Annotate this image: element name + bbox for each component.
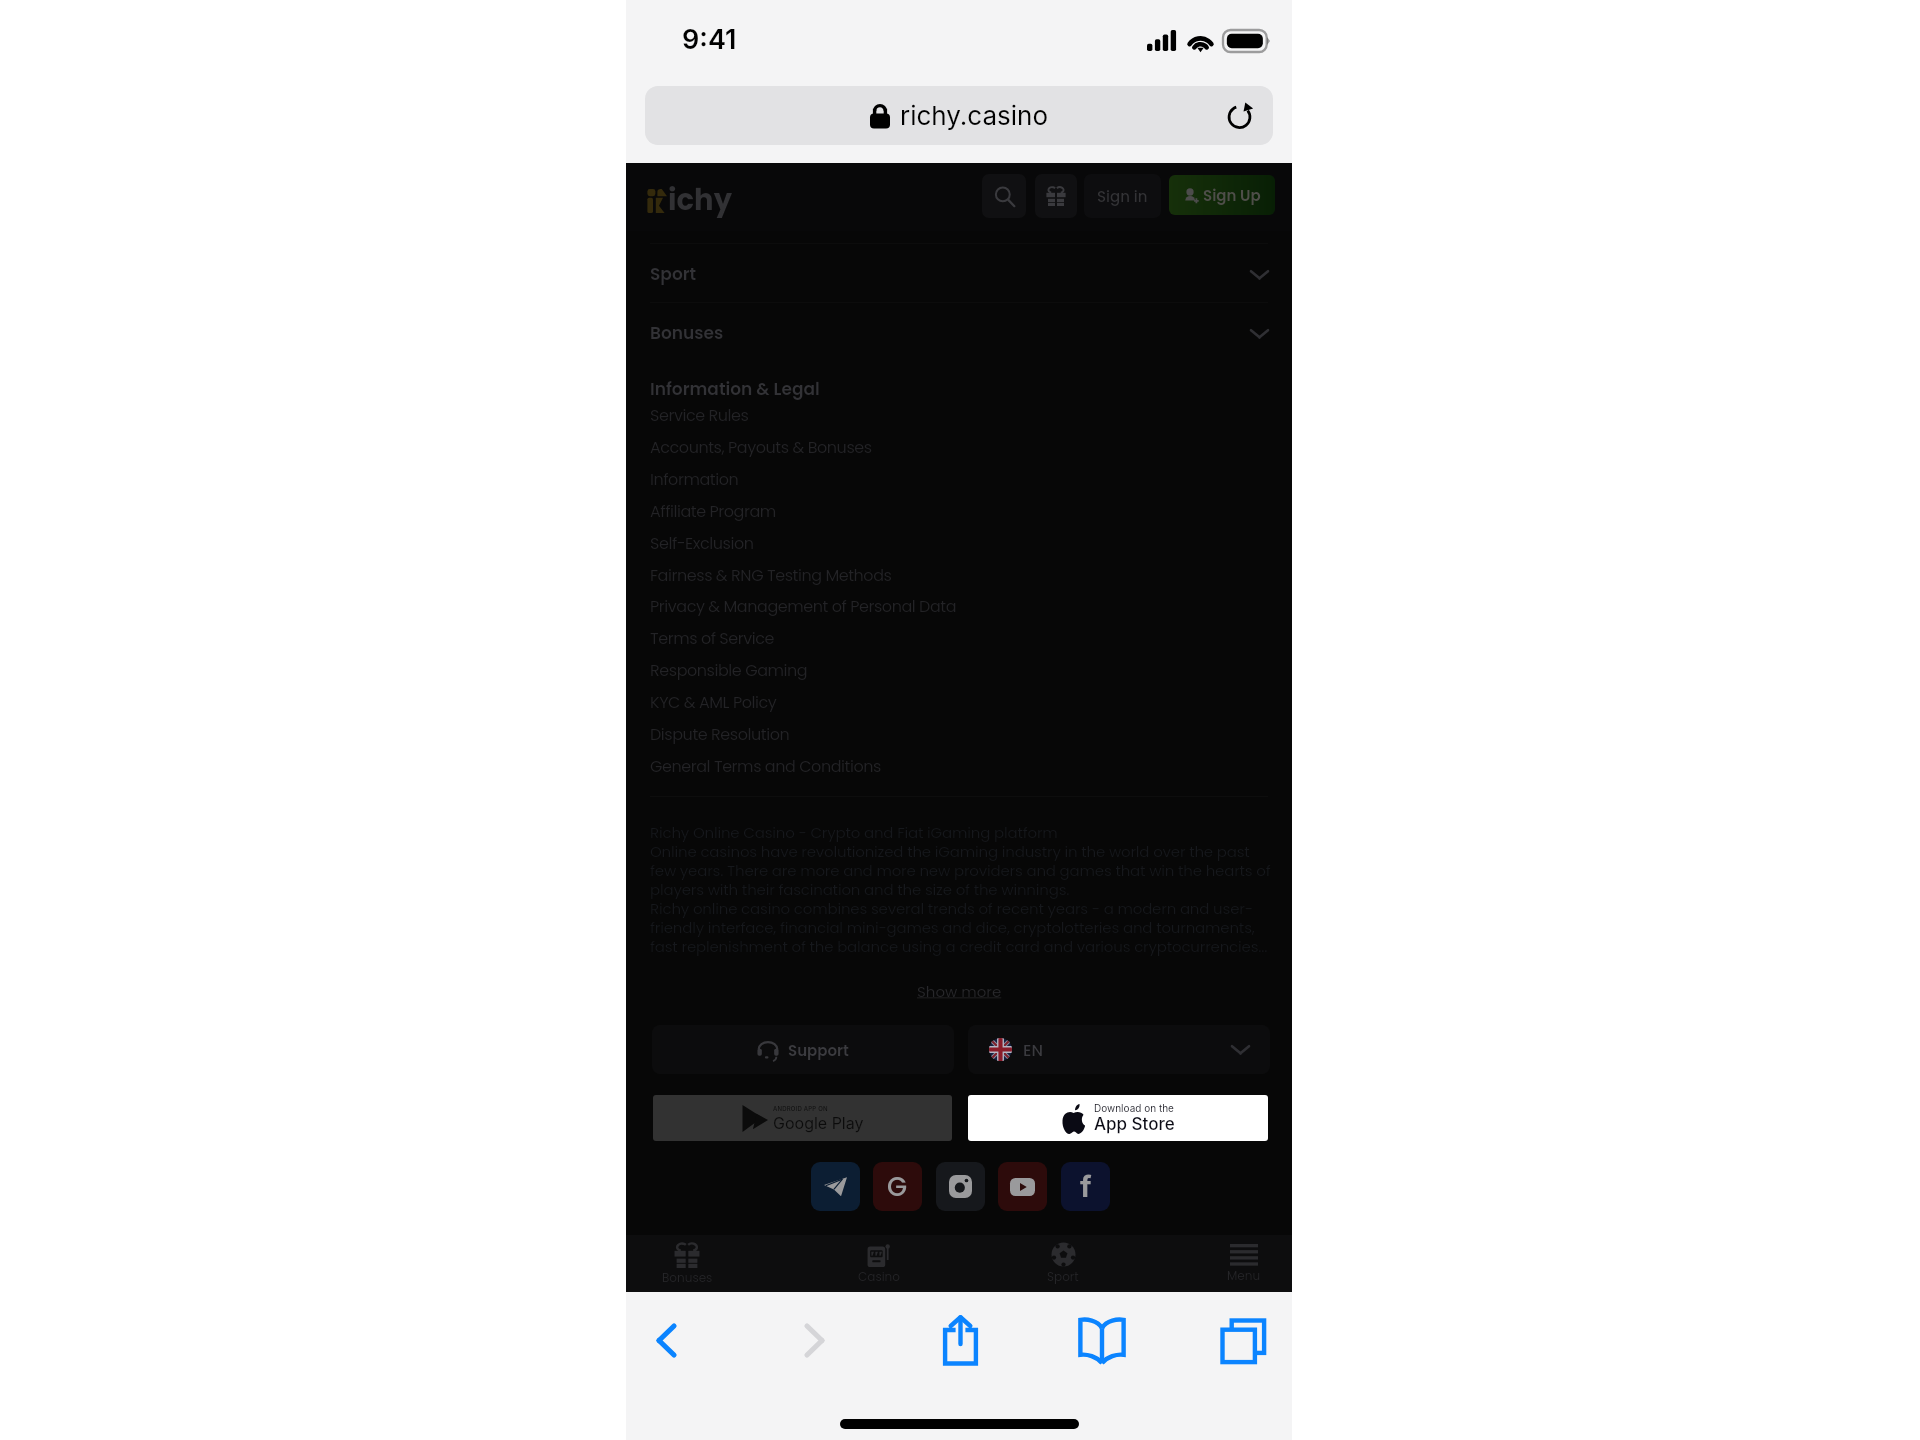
button[interactable]: Download on the (968, 1095, 1268, 1141)
staticText: Support (788, 1040, 849, 1061)
staticText: Sign Up (1203, 185, 1261, 206)
staticText: Richy Online Casino - Crypto and Fiat iG… (650, 822, 1271, 957)
staticText: Information & Legal (650, 377, 820, 401)
button[interactable]: Share (930, 1311, 990, 1369)
staticText: Google Play (773, 1113, 864, 1132)
button[interactable]: Dispute Resolution (626, 718, 1292, 749)
staticText: Bonuses (650, 321, 724, 345)
button[interactable]: Privacy & Management of Personal Data (626, 590, 1292, 621)
staticText: Privacy & Management of Personal Data (650, 595, 957, 617)
button[interactable]: Service Rules (626, 399, 1292, 430)
staticText: Self-Exclusion (650, 532, 754, 554)
button[interactable]: Casino (824, 1235, 934, 1292)
staticText: EN (1023, 1039, 1043, 1061)
button[interactable]: Google (873, 1162, 922, 1211)
staticText: Download on the (1094, 1102, 1174, 1114)
button[interactable]: Responsible Gaming (626, 654, 1292, 685)
staticText: richy.casino (900, 100, 1048, 131)
staticText: Affiliate Program (650, 500, 776, 522)
staticText: Sign in (1097, 186, 1148, 207)
button[interactable]: Self-Exclusion (626, 527, 1292, 558)
button[interactable]: Sport (1008, 1235, 1118, 1292)
button[interactable]: Search (982, 174, 1026, 218)
staticText: Menu (1227, 1267, 1261, 1284)
button[interactable]: Sign Up (1169, 175, 1275, 215)
staticText: Sport (1047, 1268, 1079, 1285)
staticText: Bonuses (662, 1269, 713, 1286)
button[interactable]: Bookmarks (1072, 1312, 1132, 1370)
button[interactable]: Support (652, 1025, 954, 1074)
staticText: Casino (858, 1268, 900, 1285)
staticText: KYC & AML Policy (650, 691, 777, 713)
button[interactable]: Sport (626, 245, 1292, 303)
button[interactable]: richy.casino (645, 86, 1273, 145)
button[interactable]: Bonuses (626, 304, 1292, 362)
staticText: Information (650, 468, 739, 490)
button[interactable]: Accounts, Payouts & Bonuses (626, 431, 1292, 462)
button[interactable]: Tabs (1212, 1311, 1272, 1369)
staticText: Accounts, Payouts & Bonuses (650, 436, 872, 458)
button[interactable]: Bonuses (632, 1235, 742, 1292)
button[interactable]: ANDROID APP ON (653, 1095, 952, 1141)
button[interactable]: Terms of Service (626, 622, 1292, 653)
button[interactable]: YouTube (998, 1162, 1047, 1211)
staticText: Terms of Service (650, 627, 775, 649)
staticText: f (1080, 1169, 1092, 1204)
button[interactable]: Fairness & RNG Testing Methods (626, 559, 1292, 590)
staticText: App Store (1094, 1114, 1175, 1135)
staticText: ichy (668, 180, 732, 221)
staticText: G (887, 1169, 908, 1205)
button[interactable]: Bonuses (1035, 174, 1077, 218)
staticText: 9:41 (682, 23, 737, 56)
button[interactable]: EN (968, 1025, 1270, 1074)
button[interactable]: Sign in (1084, 174, 1161, 218)
button[interactable]: Instagram (936, 1162, 985, 1211)
button[interactable]: Show more (917, 981, 1002, 1002)
staticText: ANDROID APP ON (773, 1105, 828, 1112)
button[interactable]: Facebook (1061, 1162, 1110, 1211)
button[interactable]: Reload page (1216, 93, 1262, 139)
button[interactable]: Menu (1189, 1235, 1299, 1292)
button[interactable]: Affiliate Program (626, 495, 1292, 526)
staticText: Service Rules (650, 404, 749, 426)
button[interactable]: Forward (784, 1311, 844, 1369)
button[interactable]: Back (636, 1311, 696, 1369)
button[interactable]: General Terms and Conditions (626, 750, 1292, 781)
staticText: Sport (650, 262, 697, 286)
staticText: Dispute Resolution (650, 723, 790, 745)
button[interactable]: Telegram (811, 1162, 860, 1211)
staticText: Fairness & RNG Testing Methods (650, 564, 892, 586)
staticText: Responsible Gaming (650, 659, 808, 681)
button[interactable]: KYC & AML Policy (626, 686, 1292, 717)
staticText: General Terms and Conditions (650, 755, 881, 777)
